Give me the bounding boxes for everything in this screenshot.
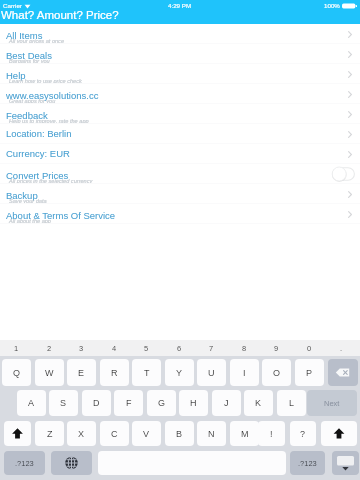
button[interactable]: Z — [35, 421, 64, 446]
button[interactable]: E — [67, 359, 96, 386]
button[interactable]: X — [67, 421, 96, 446]
button[interactable]: C — [100, 421, 129, 446]
button[interactable]: Backup — [340, 184, 360, 204]
button[interactable]: www.easysolutions.cc — [0, 84, 360, 104]
button[interactable]: Help — [340, 64, 360, 84]
button[interactable]: 5 — [132, 340, 161, 356]
staticText: . — [340, 344, 343, 352]
button[interactable]: L — [277, 390, 306, 416]
button[interactable]: U — [197, 359, 226, 386]
staticText: Feedback — [6, 110, 48, 121]
button[interactable]: All Items — [0, 24, 360, 44]
button[interactable]: S — [49, 390, 78, 416]
button[interactable]: Hide keyboard — [332, 451, 359, 475]
staticText: www.easysolutions.cc — [6, 90, 99, 101]
button[interactable]: Y — [165, 359, 194, 386]
button[interactable]: K — [244, 390, 273, 416]
button[interactable]: O — [262, 359, 291, 386]
staticText: ? — [300, 429, 306, 439]
button[interactable]: T — [132, 359, 161, 386]
button[interactable]: 3 — [67, 340, 96, 356]
button[interactable]: Convert Prices — [0, 164, 360, 184]
button[interactable]: All Items — [340, 24, 360, 44]
button[interactable]: Best Deals — [0, 44, 360, 64]
staticText: A — [28, 398, 35, 408]
button[interactable]: www.easysolutions.cc — [340, 84, 360, 104]
button[interactable]: About & Terms Of Service — [0, 204, 360, 224]
button[interactable]: G — [147, 390, 176, 416]
button[interactable]: Best Deals — [340, 44, 360, 64]
button[interactable]: M — [230, 421, 259, 446]
button[interactable]: A — [17, 390, 46, 416]
button[interactable]: 8 — [230, 340, 259, 356]
staticText: Great apps for you — [9, 98, 56, 104]
button[interactable]: Shift — [4, 421, 31, 446]
button[interactable]: Convert prices toggle — [332, 164, 355, 184]
staticText: R — [111, 368, 118, 378]
button[interactable]: Help — [0, 64, 360, 84]
staticText: 8 — [242, 344, 247, 352]
button[interactable]: Feedback — [0, 104, 360, 124]
staticText: V — [143, 429, 150, 439]
staticText: 5 — [144, 344, 149, 352]
button[interactable]: Location: Berlin — [340, 124, 360, 144]
staticText: C — [111, 429, 118, 439]
button[interactable]: Backspace — [328, 359, 358, 386]
button[interactable]: 9 — [262, 340, 291, 356]
staticText: All Items — [6, 30, 43, 41]
staticText: Carrier — [3, 2, 22, 9]
button[interactable]: Feedback — [340, 104, 360, 124]
staticText: G — [158, 398, 166, 408]
button[interactable]: Location: Berlin — [0, 124, 360, 144]
staticText: Convert Prices — [6, 170, 69, 181]
button[interactable]: 7 — [197, 340, 226, 356]
button[interactable]: 6 — [165, 340, 194, 356]
staticText: 3 — [79, 344, 84, 352]
staticText: ! — [270, 429, 273, 439]
button[interactable]: 4 — [100, 340, 129, 356]
button[interactable]: W — [35, 359, 64, 386]
button[interactable]: About & Terms Of Service — [340, 204, 360, 224]
staticText: M — [241, 429, 249, 439]
button[interactable]: .?123 — [4, 451, 45, 475]
staticText: 0 — [307, 344, 312, 352]
staticText: N — [208, 429, 215, 439]
staticText: 4 — [112, 344, 117, 352]
button[interactable]: V — [132, 421, 161, 446]
button[interactable]: Switch keyboard — [51, 451, 92, 475]
staticText: Backup — [6, 190, 38, 201]
staticText: Learn how to use price check — [9, 78, 82, 84]
button[interactable]: Q — [2, 359, 31, 386]
button[interactable]: P — [295, 359, 324, 386]
staticText: 2 — [47, 344, 52, 352]
button[interactable]: 2 — [35, 340, 64, 356]
staticText: D — [93, 398, 100, 408]
staticText: B — [176, 429, 183, 439]
button[interactable]: D — [82, 390, 111, 416]
staticText: Help us to improve, rate the app — [9, 118, 89, 124]
button[interactable]: 0 — [295, 340, 324, 356]
staticText: Best Deals — [6, 50, 52, 61]
button[interactable]: ? — [290, 421, 316, 446]
button[interactable]: .?123 — [290, 451, 325, 475]
staticText: 1 — [14, 344, 19, 352]
staticText: Bargains for you — [9, 58, 50, 64]
button[interactable]: 1 — [2, 340, 31, 356]
button[interactable]: N — [197, 421, 226, 446]
button[interactable]: F — [114, 390, 143, 416]
button[interactable]: ! — [258, 421, 285, 446]
staticText: All your prices at once — [9, 38, 65, 44]
button[interactable]: R — [100, 359, 129, 386]
button[interactable]: J — [212, 390, 241, 416]
button[interactable]: Next — [307, 390, 357, 416]
button[interactable]: B — [165, 421, 194, 446]
button[interactable]: Currency: EUR — [340, 144, 360, 164]
button[interactable]: H — [179, 390, 208, 416]
button[interactable]: I — [230, 359, 259, 386]
button[interactable]: Shift — [321, 421, 357, 446]
button[interactable]: Backup — [0, 184, 360, 204]
staticText: Y — [176, 368, 183, 378]
button[interactable]: Currency: EUR — [0, 144, 360, 164]
